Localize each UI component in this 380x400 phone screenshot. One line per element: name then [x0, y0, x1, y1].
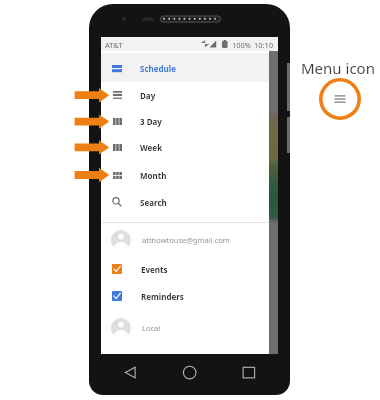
- button[interactable]: Month: [101, 162, 269, 188]
- button[interactable]: Local: [101, 315, 269, 341]
- staticText: 10:10: [254, 40, 274, 50]
- button[interactable]: Menu: [319, 78, 361, 120]
- staticText: Search: [140, 197, 167, 208]
- button[interactable]: atthowtouse@gmail.com: [101, 227, 269, 253]
- staticText: Reminders: [141, 291, 184, 302]
- staticText: Menu icon: [301, 58, 375, 78]
- button[interactable]: Schedule: [101, 55, 269, 81]
- staticText: Month: [140, 170, 167, 181]
- staticText: AT&T: [105, 40, 123, 50]
- staticText: Schedule: [140, 63, 176, 74]
- staticText: 3 Day: [140, 116, 162, 127]
- button[interactable]: Events: [101, 256, 269, 282]
- button[interactable]: Day: [101, 82, 269, 108]
- button[interactable]: Search: [101, 189, 269, 215]
- button[interactable]: 3 Day: [101, 108, 269, 134]
- button[interactable]: Reminders: [101, 283, 269, 309]
- button[interactable]: Week: [101, 134, 269, 160]
- staticText: Events: [141, 264, 168, 275]
- staticText: 100%: [232, 40, 252, 50]
- staticText: Week: [140, 142, 163, 153]
- staticText: Local: [142, 323, 161, 333]
- staticText: atthowtouse@gmail.com: [142, 235, 230, 245]
- staticText: Day: [140, 90, 156, 101]
- button[interactable]: [101, 53, 269, 82]
